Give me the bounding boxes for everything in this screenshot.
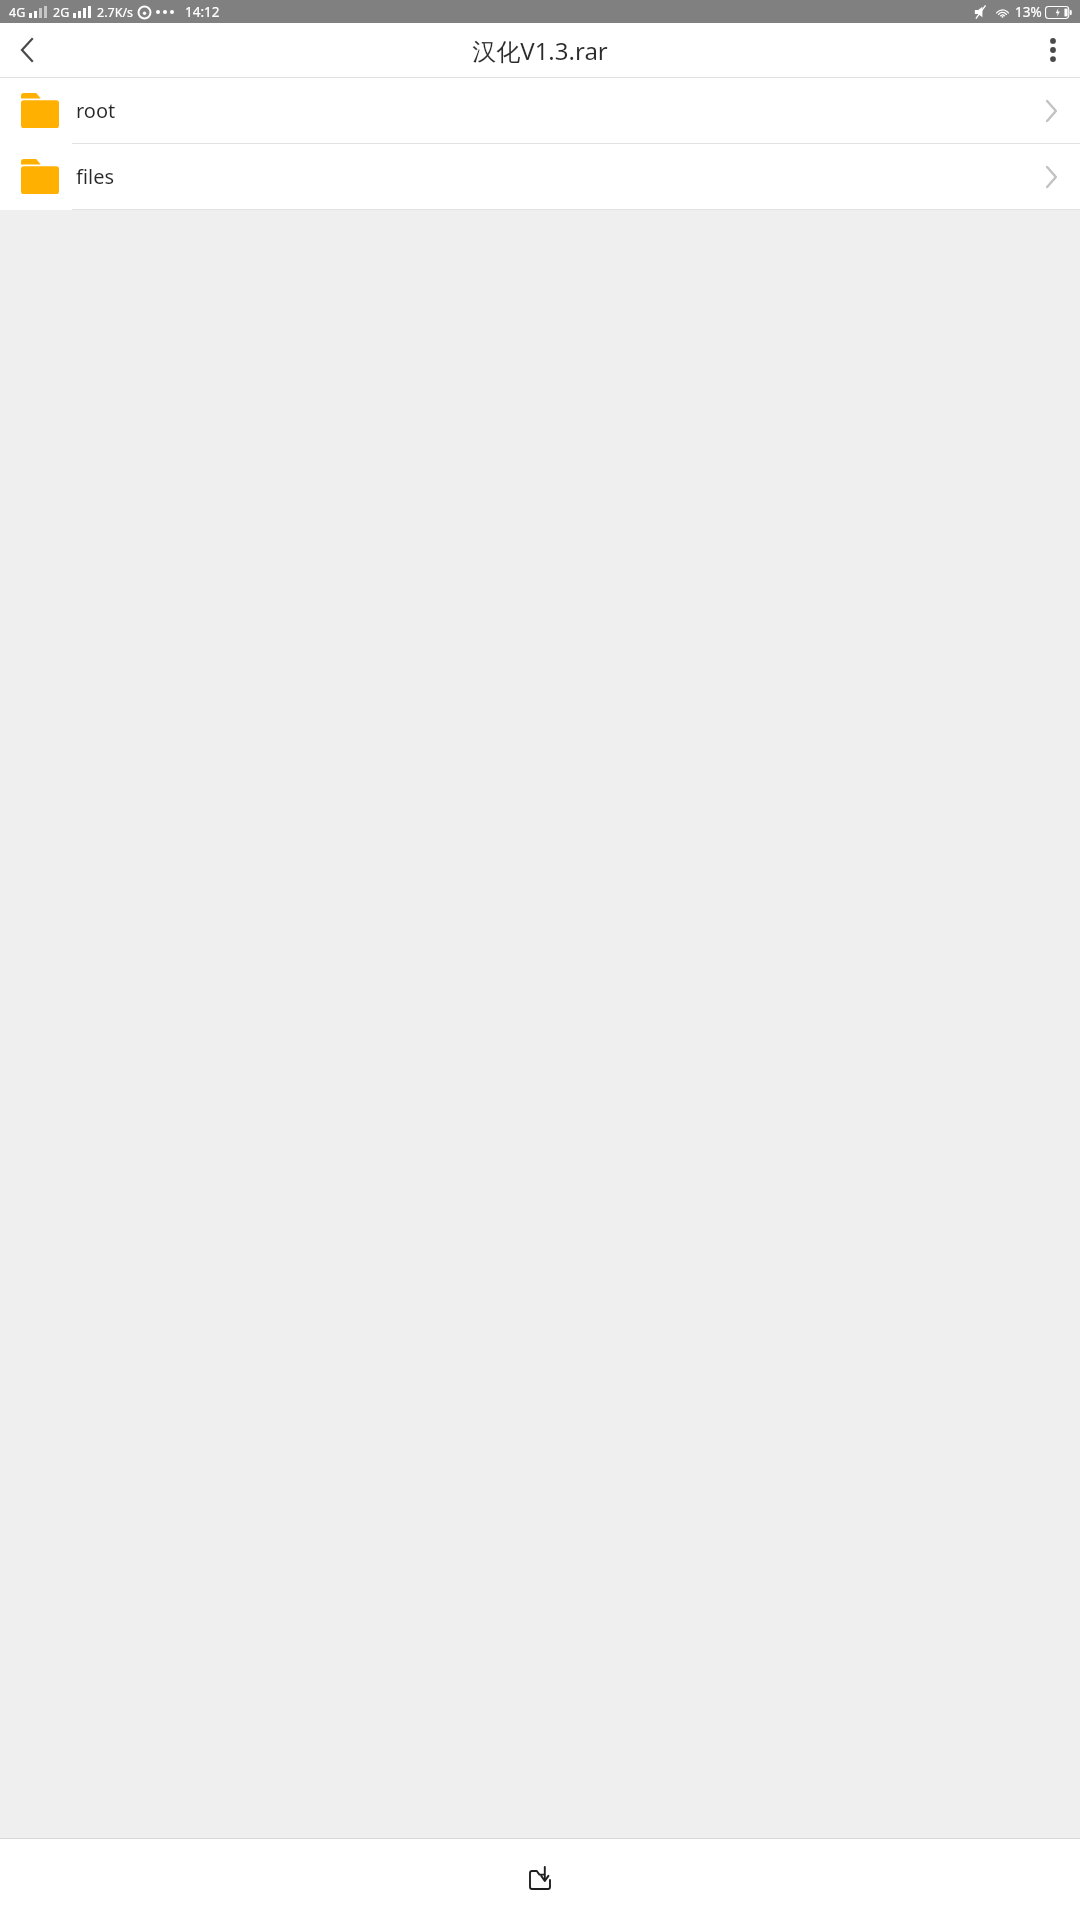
staticText: 13% — [1015, 3, 1042, 21]
button[interactable]: More options — [1026, 23, 1080, 77]
button[interactable]: files — [0, 144, 1080, 209]
staticText: root — [76, 97, 116, 124]
button[interactable]: Back — [0, 23, 54, 77]
staticText: 汉化V1.3.rar — [472, 34, 608, 67]
staticText: 2G — [53, 4, 70, 21]
button[interactable]: Extract — [495, 1847, 585, 1913]
staticText: 2.7K/s — [97, 4, 134, 21]
button[interactable]: root — [0, 78, 1080, 143]
staticText: 14:12 — [185, 3, 220, 21]
staticText: files — [76, 163, 115, 190]
staticText: 4G — [9, 4, 26, 21]
